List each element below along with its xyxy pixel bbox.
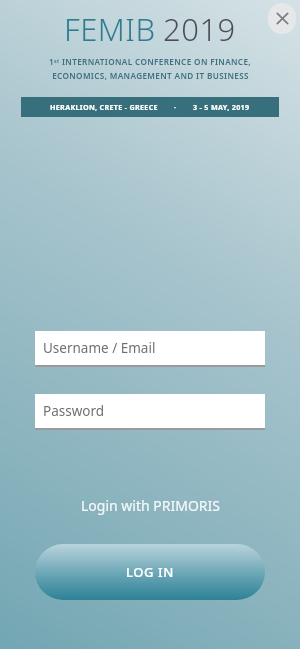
staticText: ECONOMICS, MANAGEMENT AND IT BUSINESS (52, 70, 249, 81)
button[interactable]: Username / Email (35, 331, 265, 367)
button[interactable]: LOG IN (35, 544, 265, 600)
staticText: FEMIB (64, 8, 156, 50)
staticText: LOG IN (126, 563, 174, 581)
button[interactable]: Login with PRIMORIS (71, 492, 230, 519)
staticText: 3 - 5 MAY, 2019 (193, 102, 250, 112)
button[interactable]: Close (268, 3, 296, 34)
button[interactable]: Password (35, 394, 265, 430)
staticText: 1ˢᵗ INTERNATIONAL CONFERENCE ON FINANCE, (49, 56, 251, 67)
staticText: · (174, 102, 177, 112)
staticText: Username / Email (43, 339, 156, 357)
staticText: 2019 (163, 8, 236, 50)
staticText: HERAKLION, CRETE - GREECE (50, 102, 158, 112)
staticText: Password (43, 402, 105, 420)
